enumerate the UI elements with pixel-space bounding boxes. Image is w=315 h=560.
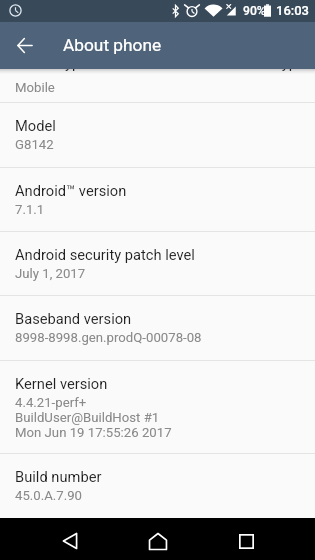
staticText: About phone bbox=[63, 35, 162, 55]
button[interactable]: Android™ version bbox=[0, 168, 315, 231]
staticText: Build number bbox=[15, 468, 102, 485]
staticText: type bbox=[277, 69, 305, 71]
staticText: 90% bbox=[243, 4, 266, 18]
staticText: Model bbox=[15, 117, 56, 134]
staticText: 45.0.A.7.90 bbox=[15, 488, 82, 503]
button[interactable]: Baseband version bbox=[0, 296, 315, 360]
button[interactable]: Android security patch level bbox=[0, 232, 315, 295]
button[interactable]: Build number bbox=[0, 454, 315, 518]
button[interactable]: Phone type bbox=[0, 69, 315, 102]
staticText: July 1, 2017 bbox=[15, 266, 86, 281]
staticText: Android™ version bbox=[15, 182, 127, 199]
button[interactable]: Back bbox=[48, 520, 92, 560]
staticText: Mobile bbox=[15, 80, 55, 95]
staticText: Phone type bbox=[15, 69, 89, 71]
staticText: 4.4.21-perf+ bbox=[15, 395, 87, 410]
staticText: Baseband version bbox=[15, 310, 132, 327]
staticText: 16:03 bbox=[276, 3, 309, 18]
button[interactable]: Model bbox=[0, 103, 315, 167]
button[interactable]: Home bbox=[136, 520, 180, 560]
button[interactable]: Kernel version bbox=[0, 361, 315, 453]
staticText: BuildUser@BuildHost #1 bbox=[15, 410, 160, 425]
button[interactable]: Recent apps bbox=[224, 520, 268, 560]
staticText: Kernel version bbox=[15, 375, 108, 392]
staticText: 7.1.1 bbox=[15, 202, 45, 217]
staticText: Android security patch level bbox=[15, 246, 195, 263]
staticText: G8142 bbox=[15, 137, 54, 152]
staticText: Mon Jun 19 17:55:26 2017 bbox=[15, 425, 172, 440]
staticText: 8998-8998.gen.prodQ-00078-08 bbox=[15, 330, 202, 345]
button[interactable]: Back bbox=[8, 29, 41, 62]
